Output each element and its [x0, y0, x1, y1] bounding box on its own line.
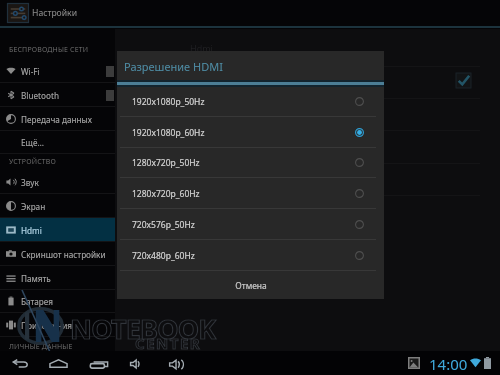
- button[interactable]: Wi-Fi: [0, 59, 115, 83]
- button[interactable]: Bluetooth: [0, 83, 115, 107]
- staticText: Скриншот настройки: [21, 249, 106, 260]
- staticText: Экран: [21, 201, 46, 212]
- button[interactable]: [0, 0, 500, 26]
- button[interactable]: Volume down: [126, 355, 148, 373]
- staticText: УСТРОЙСТВО: [9, 157, 57, 167]
- button[interactable]: Память: [0, 266, 115, 290]
- staticText: Wi-Fi: [21, 66, 40, 77]
- staticText: Разрешение HDMI: [124, 59, 223, 74]
- button[interactable]: Volume up: [165, 355, 189, 374]
- button[interactable]: Экран: [0, 194, 115, 218]
- button[interactable]: Приложения: [0, 313, 115, 337]
- staticText: Приложения: [21, 320, 72, 331]
- staticText: Hdmi: [190, 42, 213, 54]
- staticText: 1920x1080p_50Hz: [132, 96, 205, 108]
- button[interactable]: Ещё…: [0, 130, 115, 154]
- staticText: 720x480p_60Hz: [132, 250, 195, 262]
- button[interactable]: Отмена: [117, 272, 384, 299]
- staticText: 720x576p_50Hz: [132, 219, 195, 231]
- staticText: Передача данных: [21, 114, 92, 125]
- staticText: Батарея: [21, 296, 53, 307]
- staticText: Ещё…: [21, 137, 44, 148]
- staticText: Bluetooth: [21, 90, 59, 101]
- button[interactable]: Hdmi: [0, 218, 115, 242]
- button[interactable]: Home: [45, 355, 72, 372]
- button[interactable]: Recent apps: [86, 356, 112, 373]
- staticText: 1280x720p_60Hz: [132, 188, 200, 200]
- staticText: CENTER: [135, 333, 202, 353]
- staticText: БЕСПРОВОДНЫЕ СЕТИ: [9, 45, 89, 55]
- staticText: Память: [21, 273, 51, 284]
- button[interactable]: 1920x1080p_50Hz: [117, 86, 384, 117]
- staticText: ЛИЧНЫЕ ДАННЫЕ: [9, 342, 73, 352]
- staticText: 1920x1080p_60Hz: [132, 127, 205, 139]
- button[interactable]: 1920x1080p_60Hz: [117, 117, 384, 148]
- staticText: Hdmi: [21, 225, 42, 236]
- staticText: 1280x720p_50Hz: [132, 157, 200, 169]
- button[interactable]: Передача данных: [0, 107, 115, 131]
- button[interactable]: Батарея: [0, 289, 115, 313]
- button[interactable]: 1280x720p_60Hz: [117, 178, 384, 209]
- staticText: Настройки: [32, 7, 77, 19]
- button[interactable]: Back: [8, 355, 32, 372]
- button[interactable]: 720x480p_60Hz: [117, 240, 384, 271]
- button[interactable]: 1280x720p_50Hz: [117, 147, 384, 178]
- staticText: NOTEBOOK: [70, 310, 216, 347]
- staticText: Звук: [21, 177, 39, 188]
- staticText: Отмена: [235, 280, 267, 292]
- button[interactable]: Скриншот настройки: [0, 242, 115, 266]
- button[interactable]: 720x576p_50Hz: [117, 209, 384, 240]
- staticText: 14:00: [429, 354, 468, 374]
- button[interactable]: Звук: [0, 170, 115, 194]
